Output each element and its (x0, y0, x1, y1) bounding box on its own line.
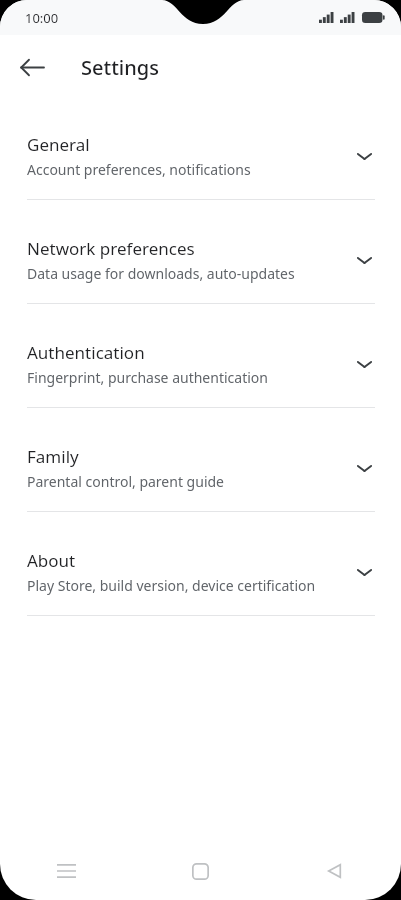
button[interactable]: Network preferences (0, 217, 401, 303)
staticText: Settings (81, 54, 159, 81)
staticText: Authentication (27, 341, 145, 364)
staticText: Play Store, build version, device certif… (27, 576, 316, 595)
button[interactable]: Back (10, 45, 55, 90)
button[interactable]: About (0, 529, 401, 615)
staticText: Account preferences, notifications (27, 160, 251, 179)
staticText: Data usage for downloads, auto-updates (27, 264, 295, 283)
button[interactable]: Home (133, 842, 267, 900)
staticText: Fingerprint, purchase authentication (27, 368, 268, 387)
staticText: Family (27, 445, 79, 468)
staticText: Parental control, parent guide (27, 472, 224, 491)
staticText: Network preferences (27, 237, 195, 260)
button[interactable]: General (0, 113, 401, 199)
button[interactable]: Recents (0, 842, 133, 900)
button[interactable]: Family (0, 425, 401, 511)
button[interactable]: Authentication (0, 321, 401, 407)
staticText: About (27, 549, 76, 572)
button[interactable]: Back (267, 842, 401, 900)
staticText: 10:00 (25, 9, 59, 27)
staticText: General (27, 133, 90, 156)
